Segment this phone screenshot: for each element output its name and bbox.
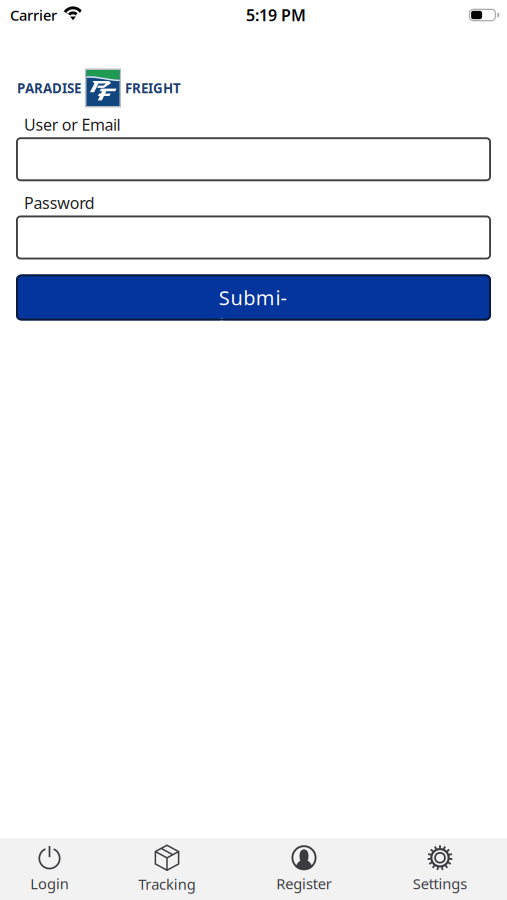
button[interactable]: Login [0, 838, 99, 900]
staticText: FREIGHT [125, 79, 181, 97]
staticText: User or Email [24, 114, 121, 135]
staticText: Settings [413, 874, 467, 893]
button[interactable]: Submit [16, 274, 491, 320]
button[interactable]: Tracking [99, 838, 235, 900]
button[interactable]: Register [235, 838, 373, 900]
staticText: Carrier [10, 5, 57, 25]
button[interactable]: Settings [373, 838, 507, 900]
staticText: 5:19 PM [246, 4, 306, 26]
staticText: PARADISE [17, 79, 81, 97]
staticText: Register [276, 874, 332, 893]
staticText: Submit [219, 284, 288, 311]
staticText: Tracking [138, 874, 196, 894]
staticText: Password [24, 192, 95, 213]
staticText: Login [30, 874, 69, 893]
